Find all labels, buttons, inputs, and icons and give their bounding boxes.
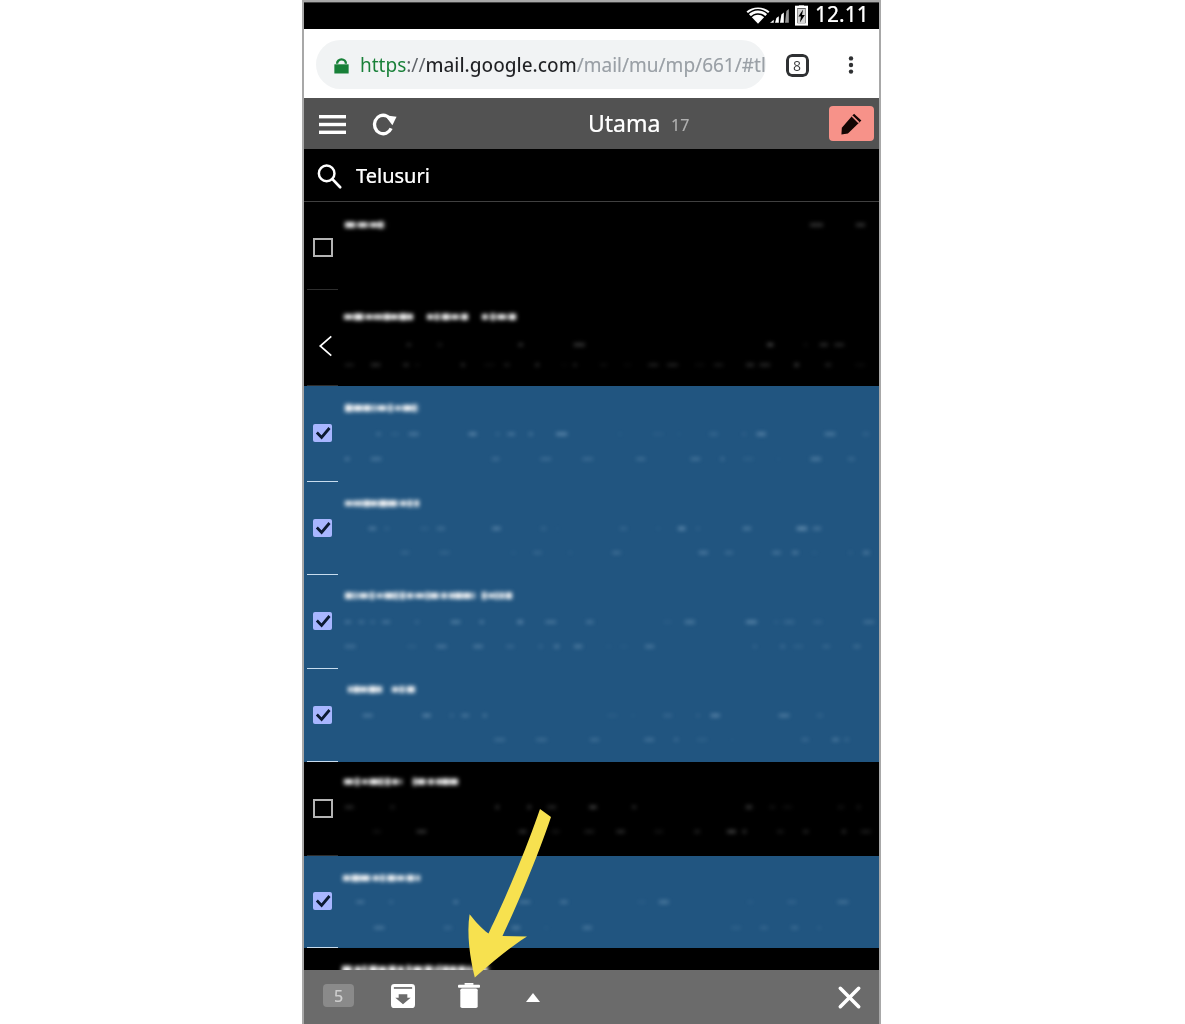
button[interactable]: Close (833, 981, 865, 1013)
button[interactable]: Delete (453, 979, 485, 1011)
staticText: 5 (334, 985, 344, 1007)
button[interactable]: Select (313, 706, 332, 724)
staticText: Utama (588, 107, 661, 138)
button[interactable]: 5 (323, 984, 354, 1007)
button[interactable]: Select (313, 892, 332, 910)
button[interactable]: Select (304, 482, 879, 575)
button[interactable]: https://mail.google.com/mail/mu/mp/661/#… (316, 40, 766, 89)
button[interactable]: Select (304, 762, 879, 856)
button[interactable]: Select (304, 669, 879, 762)
button[interactable]: Menu (312, 104, 352, 144)
button[interactable]: Select (304, 202, 879, 290)
button[interactable]: Refresh (365, 104, 405, 144)
staticText: 8 (793, 56, 802, 75)
button[interactable]: Select (304, 856, 879, 948)
button[interactable]: Select (313, 799, 333, 818)
button[interactable]: More options (518, 982, 548, 1012)
staticText: https://mail.google.com/mail/mu/mp/661/#… (360, 52, 766, 78)
staticText: 17 (671, 114, 690, 136)
button[interactable]: Select (313, 238, 333, 257)
button[interactable]: Select (313, 612, 332, 630)
button[interactable]: Tabs (777, 45, 817, 85)
button[interactable]: Select (304, 575, 879, 669)
staticText: 12.11 (815, 0, 869, 29)
button[interactable]: Compose (829, 106, 874, 141)
button[interactable]: More options (831, 45, 871, 85)
staticText: Telusuri (356, 162, 430, 189)
button[interactable] (304, 948, 879, 970)
button[interactable] (304, 290, 879, 386)
button[interactable]: Select (313, 424, 332, 442)
button[interactable]: Select (313, 519, 332, 537)
button[interactable]: Archive (387, 980, 419, 1012)
button[interactable]: Select (304, 386, 879, 482)
